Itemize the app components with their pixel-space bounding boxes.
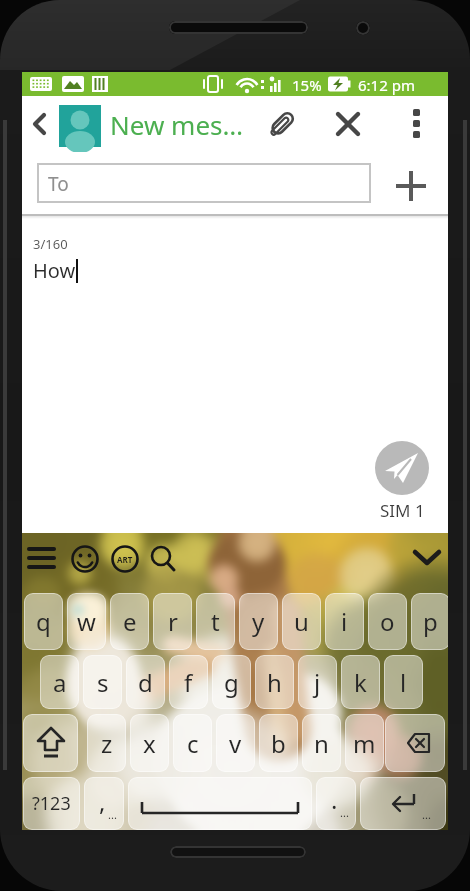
button[interactable] <box>265 108 299 142</box>
button[interactable]: g <box>212 655 251 709</box>
button[interactable] <box>26 110 54 138</box>
staticText: ... <box>422 807 431 822</box>
staticText: d <box>138 666 153 699</box>
button[interactable]: b <box>259 714 298 772</box>
button[interactable]: c <box>173 714 212 772</box>
staticText: j <box>314 666 321 699</box>
staticText: SIM 1 <box>380 499 425 522</box>
staticText: f <box>184 666 193 699</box>
staticText: h <box>267 666 282 699</box>
staticText: 15% <box>292 75 322 95</box>
staticText: z <box>101 727 113 760</box>
staticText: k <box>354 666 367 699</box>
button[interactable]: x <box>130 714 169 772</box>
staticText: y <box>252 605 265 638</box>
button[interactable]: . <box>316 777 356 830</box>
staticText: w <box>77 605 96 638</box>
button[interactable]: ART <box>111 545 139 573</box>
staticText: q <box>36 605 51 638</box>
button[interactable]: i <box>325 593 364 650</box>
button[interactable]: l <box>384 655 423 709</box>
button[interactable]: a <box>40 655 79 709</box>
staticText: New mes… <box>110 107 244 142</box>
staticText: o <box>380 605 395 638</box>
staticText: b <box>271 727 286 760</box>
staticText: e <box>123 605 137 638</box>
button[interactable] <box>59 105 101 147</box>
button[interactable]: d <box>126 655 165 709</box>
staticText: g <box>224 666 239 699</box>
staticText: 3/160 <box>33 235 68 253</box>
button[interactable]: w <box>67 593 106 650</box>
button[interactable]: n <box>302 714 341 772</box>
staticText: n <box>314 727 329 760</box>
button[interactable] <box>128 777 312 830</box>
staticText: , <box>99 785 106 818</box>
staticText: t <box>211 605 220 638</box>
button[interactable]: z <box>87 714 126 772</box>
button[interactable] <box>375 441 429 495</box>
staticText: ... <box>108 807 117 822</box>
button[interactable]: v <box>216 714 255 772</box>
button[interactable]: u <box>282 593 321 650</box>
button[interactable]: o <box>368 593 407 650</box>
staticText: l <box>400 666 407 699</box>
staticText: ART <box>117 554 133 565</box>
button[interactable]: p <box>411 593 448 650</box>
button[interactable]: h <box>255 655 294 709</box>
staticText: ... <box>340 805 349 820</box>
button[interactable]: To <box>37 163 371 203</box>
button[interactable] <box>385 714 445 772</box>
button[interactable]: s <box>83 655 122 709</box>
staticText: v <box>229 727 242 760</box>
button[interactable]: q <box>24 593 63 650</box>
staticText: . <box>331 783 338 816</box>
button[interactable] <box>23 714 78 772</box>
staticText: a <box>53 666 67 699</box>
button[interactable] <box>403 108 429 140</box>
button[interactable]: ... <box>360 777 446 830</box>
button[interactable] <box>71 545 99 573</box>
button[interactable]: f <box>169 655 208 709</box>
staticText: To <box>48 171 69 197</box>
button[interactable] <box>394 169 428 203</box>
button[interactable] <box>28 545 56 573</box>
button[interactable]: m <box>345 714 384 772</box>
button[interactable]: e <box>110 593 149 650</box>
button[interactable]: k <box>341 655 380 709</box>
button[interactable] <box>149 545 177 573</box>
button[interactable]: t <box>196 593 235 650</box>
staticText: s <box>97 666 109 699</box>
staticText: u <box>294 605 309 638</box>
button[interactable] <box>333 109 363 139</box>
staticText: m <box>353 727 376 760</box>
staticText: c <box>187 727 199 760</box>
button[interactable]: j <box>298 655 337 709</box>
staticText: How <box>33 257 76 284</box>
button[interactable]: ?123 <box>23 777 80 830</box>
button[interactable]: r <box>153 593 192 650</box>
button[interactable] <box>412 547 442 569</box>
staticText: p <box>423 605 438 638</box>
staticText: i <box>341 605 348 638</box>
staticText: 6:12 pm <box>358 75 415 95</box>
staticText: x <box>143 727 156 760</box>
staticText: r <box>168 605 178 638</box>
button[interactable]: , <box>84 777 124 830</box>
button[interactable]: y <box>239 593 278 650</box>
staticText: ?123 <box>32 791 71 816</box>
